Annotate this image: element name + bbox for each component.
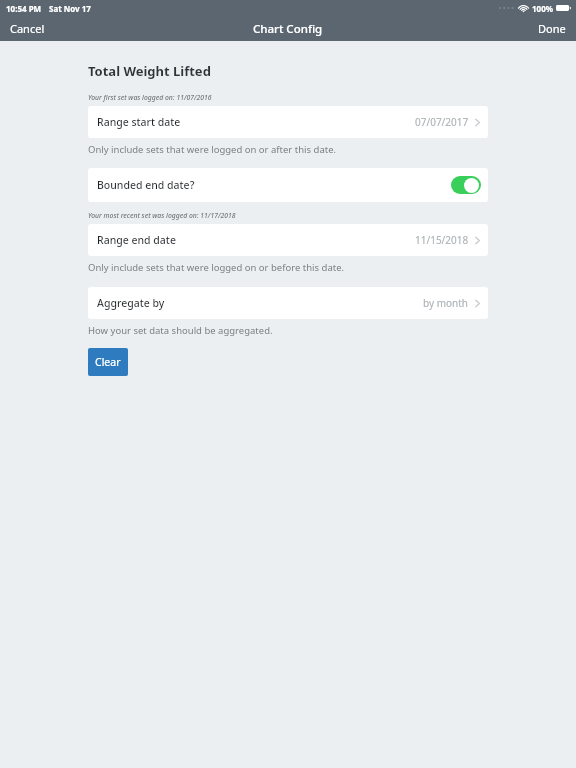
staticText: 07/07/2017 (415, 115, 469, 129)
staticText: by month (423, 296, 469, 310)
staticText: Only include sets that were logged on or… (88, 143, 337, 156)
staticText: Aggregate by (97, 296, 165, 310)
staticText: 10:54 PM (6, 3, 42, 14)
staticText: Your most recent set was logged on: 11/1… (88, 211, 236, 220)
staticText: How your set data should be aggregated. (88, 324, 273, 337)
staticText: Total Weight Lifted (88, 62, 211, 80)
staticText: Clear (95, 355, 121, 369)
staticText: Sat Nov 17 (49, 3, 91, 14)
button[interactable]: Aggregate by (88, 287, 488, 319)
button[interactable]: Done (528, 17, 576, 40)
staticText: Bounded end date? (97, 178, 195, 192)
button[interactable]: Cancel (0, 17, 55, 40)
staticText: Cancel (10, 21, 45, 36)
staticText: Your first set was logged on: 11/07/2016 (88, 93, 212, 102)
button[interactable]: Clear (88, 348, 128, 376)
staticText: Range end date (97, 233, 176, 247)
staticText: 11/15/2018 (415, 233, 469, 247)
button[interactable]: Bounded end date? (88, 168, 488, 202)
staticText: Done (538, 21, 566, 36)
button[interactable]: Range end date (88, 224, 488, 256)
staticText: Chart Config (253, 21, 323, 37)
staticText: 100% (532, 3, 553, 14)
button[interactable]: Bounded end date toggle (451, 176, 481, 194)
staticText: Range start date (97, 115, 181, 129)
staticText: Only include sets that were logged on or… (88, 261, 345, 274)
button[interactable]: Range start date (88, 106, 488, 138)
